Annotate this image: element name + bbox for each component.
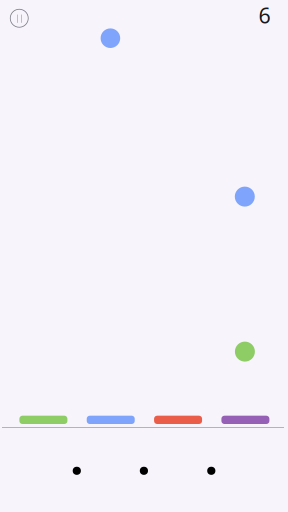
staticText: 6 — [259, 1, 271, 29]
button[interactable]: Pause — [0, 0, 40, 40]
